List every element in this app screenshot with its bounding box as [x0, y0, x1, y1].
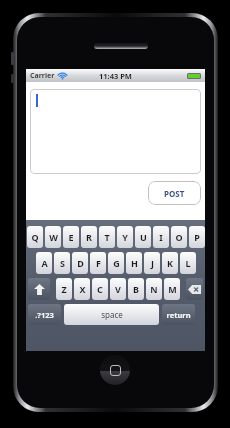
staticText: B: [133, 283, 139, 295]
staticText: Y: [122, 231, 128, 243]
staticText: S: [60, 257, 65, 269]
button[interactable]: G: [108, 252, 124, 274]
button[interactable]: H: [126, 252, 142, 274]
button[interactable]: W: [45, 226, 61, 248]
staticText: W: [49, 231, 58, 243]
staticText: L: [185, 257, 191, 269]
staticText: J: [151, 257, 154, 269]
staticText: N: [150, 283, 158, 295]
staticText: E: [68, 231, 74, 243]
button[interactable]: Q: [27, 226, 43, 248]
staticText: V: [115, 283, 121, 295]
button[interactable]: V: [110, 278, 126, 300]
button[interactable]: T: [99, 226, 115, 248]
button[interactable]: Delete: [186, 278, 203, 300]
staticText: POST: [164, 188, 185, 199]
button[interactable]: L: [180, 252, 196, 274]
staticText: O: [175, 231, 183, 243]
button[interactable]: Shift: [28, 278, 50, 300]
staticText: U: [140, 231, 147, 243]
button[interactable]: .?123: [28, 304, 61, 325]
button[interactable]: R: [81, 226, 97, 248]
button[interactable]: N: [146, 278, 162, 300]
staticText: space: [101, 309, 123, 320]
staticText: Z: [61, 283, 67, 295]
button[interactable]: space: [64, 304, 159, 325]
staticText: X: [79, 283, 86, 295]
button[interactable]: F: [90, 252, 106, 274]
button[interactable]: P: [189, 226, 205, 248]
staticText: K: [167, 257, 173, 269]
button[interactable]: K: [162, 252, 178, 274]
staticText: I: [159, 231, 163, 243]
button[interactable]: D: [72, 252, 88, 274]
staticText: C: [97, 283, 103, 295]
button[interactable]: S: [54, 252, 70, 274]
staticText: T: [104, 231, 110, 243]
button[interactable]: I: [153, 226, 169, 248]
staticText: 11:43 PM: [99, 71, 132, 81]
button[interactable]: [30, 89, 201, 174]
button[interactable]: O: [171, 226, 187, 248]
button[interactable]: U: [135, 226, 151, 248]
button[interactable]: Y: [117, 226, 133, 248]
staticText: .?123: [35, 310, 54, 320]
button[interactable]: J: [144, 252, 160, 274]
button[interactable]: X: [74, 278, 90, 300]
button[interactable]: return: [162, 304, 195, 325]
staticText: G: [113, 257, 120, 269]
staticText: H: [131, 257, 138, 269]
staticText: Carrier: [30, 71, 55, 81]
staticText: F: [96, 257, 101, 269]
button[interactable]: Z: [56, 278, 72, 300]
staticText: M: [168, 283, 177, 295]
staticText: Q: [31, 231, 39, 243]
staticText: return: [166, 310, 191, 320]
button[interactable]: E: [63, 226, 79, 248]
button[interactable]: Home: [100, 355, 130, 385]
staticText: P: [194, 231, 200, 243]
staticText: A: [41, 257, 48, 269]
staticText: R: [86, 231, 92, 243]
button[interactable]: A: [36, 252, 52, 274]
staticText: D: [77, 257, 84, 269]
button[interactable]: C: [92, 278, 108, 300]
button[interactable]: M: [164, 278, 180, 300]
button[interactable]: B: [128, 278, 144, 300]
button[interactable]: POST: [148, 181, 201, 205]
